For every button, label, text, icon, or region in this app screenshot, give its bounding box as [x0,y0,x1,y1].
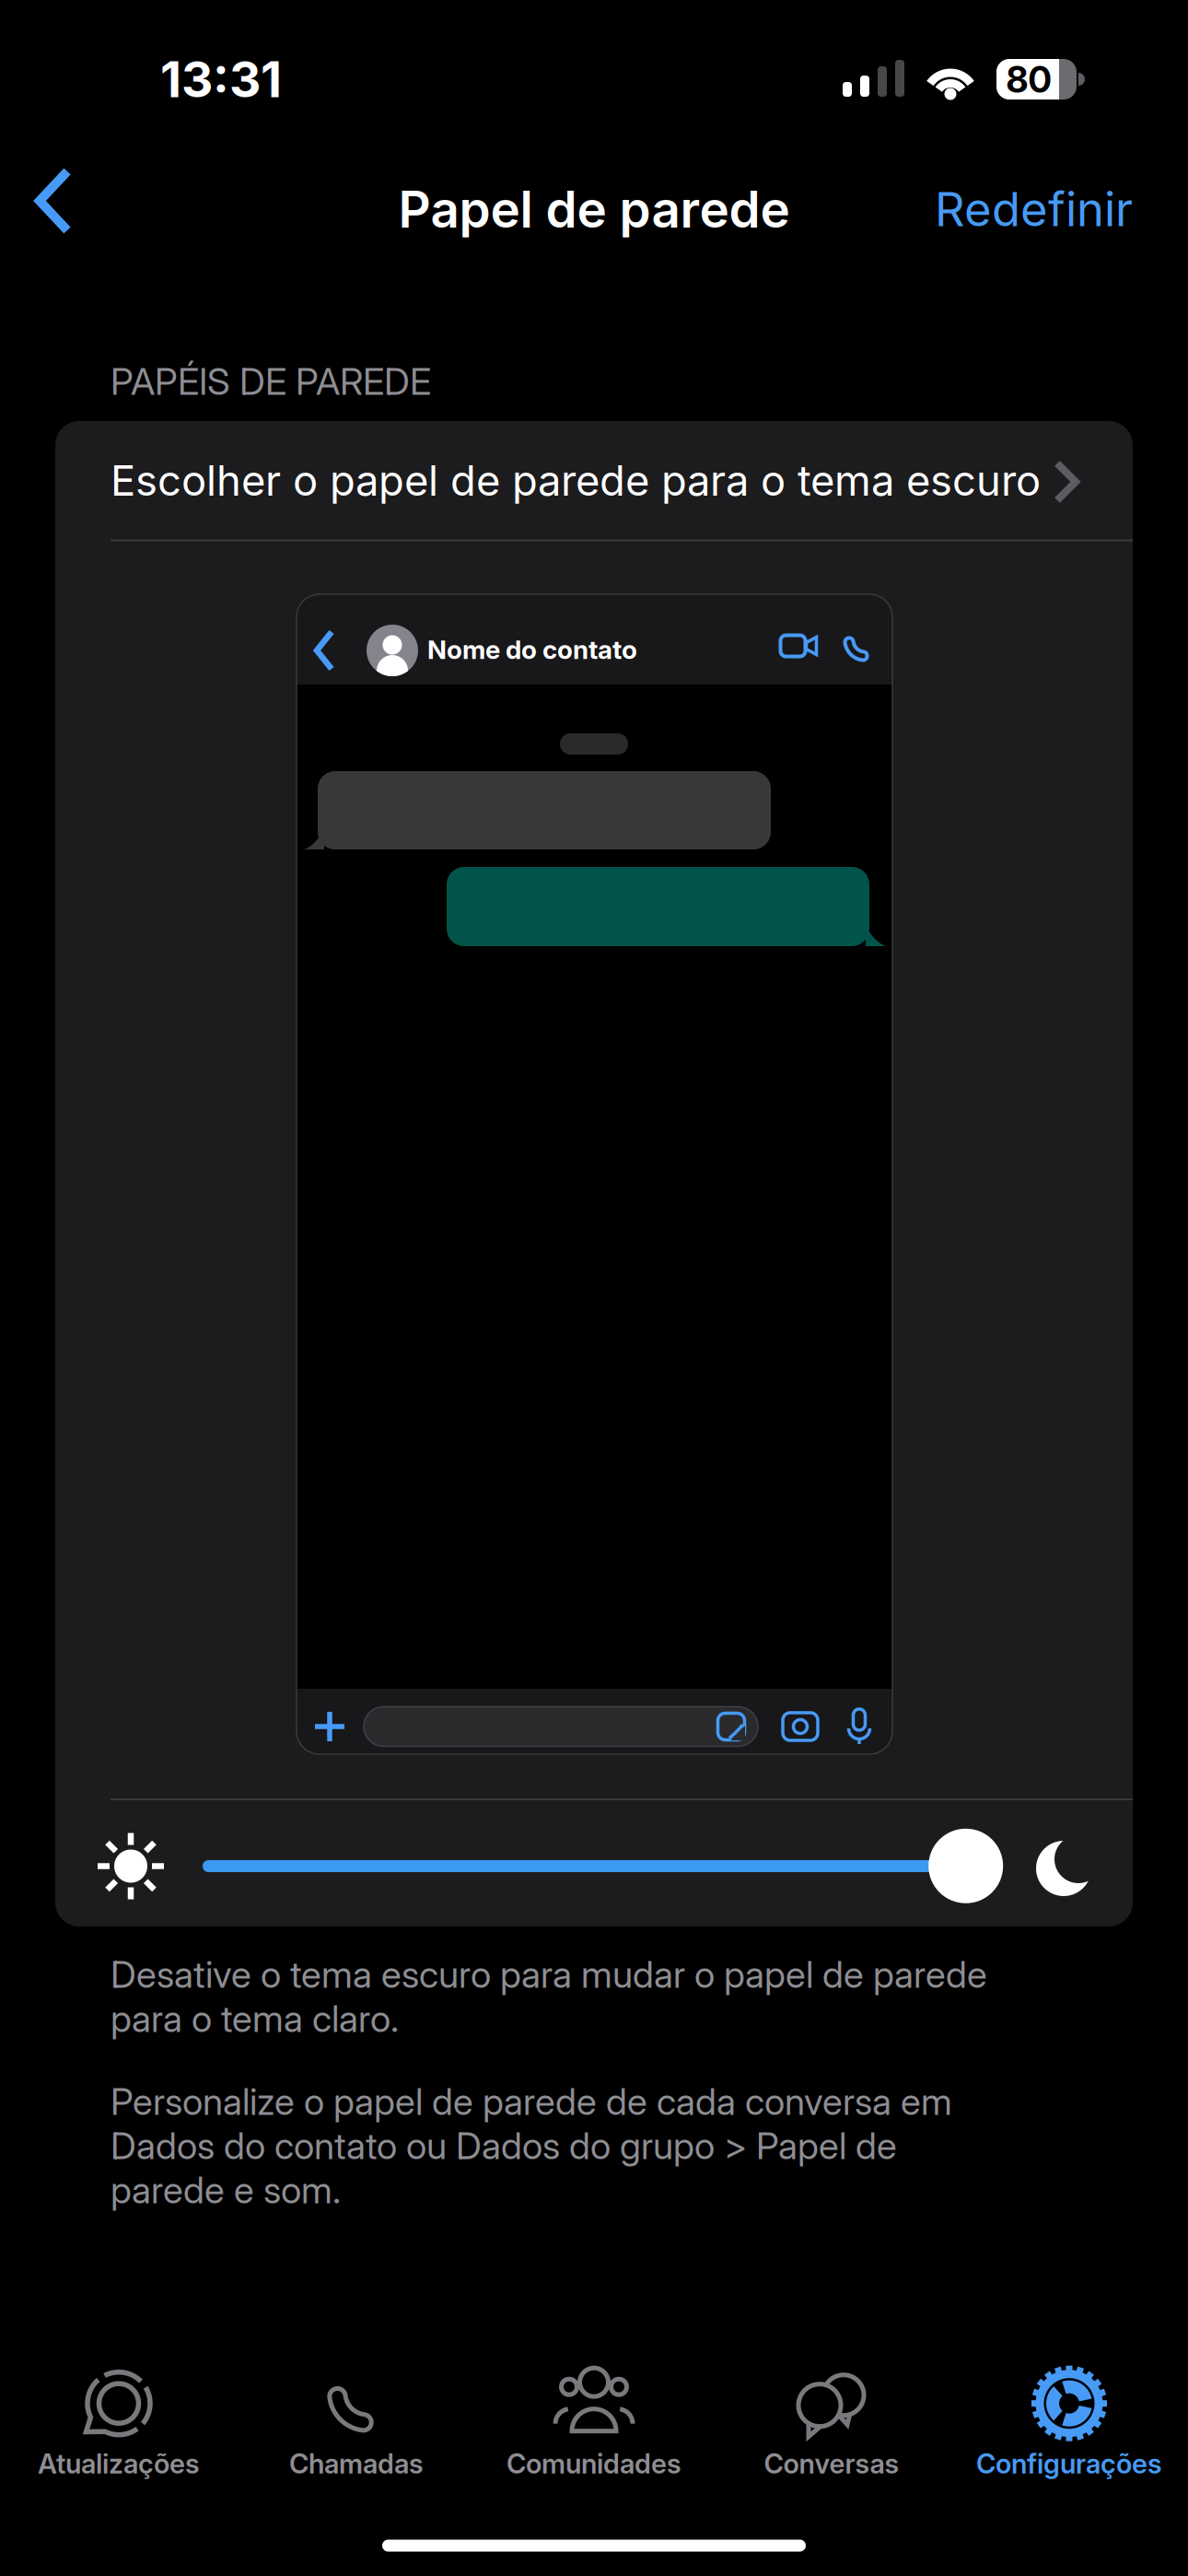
staticText: Papel de parede [398,179,790,239]
button[interactable]: Atualizações [1,2363,237,2483]
button[interactable]: Comunidades [476,2363,712,2483]
button[interactable]: Configurações [951,2363,1187,2483]
staticText: Redefinir [935,182,1133,237]
staticText: 13:31 [160,50,282,108]
staticText: Conversas [764,2448,899,2480]
staticText: PAPÉIS DE PAREDE [111,360,431,403]
staticText: Configurações [976,2448,1162,2480]
staticText: Escolher o papel de parede para o tema e… [111,456,1041,505]
button[interactable]: Conversas [714,2363,949,2483]
staticText: Dados do contato ou Dados do grupo > Pap… [111,2124,897,2167]
staticText: Comunidades [507,2448,681,2480]
button[interactable]: Redefinir [764,182,1133,237]
button[interactable]: Chamadas [239,2363,474,2483]
staticText: Nome do contato [427,634,637,665]
staticText: Desative o tema escuro para mudar o pape… [111,1953,987,1996]
button[interactable]: Back [32,166,75,236]
staticText: parede e som. [111,2168,341,2212]
button[interactable]: Escolher o papel de parede para o tema e… [55,421,1133,540]
staticText: para o tema claro. [111,1997,399,2040]
staticText: Atualizações [38,2448,200,2480]
staticText: Chamadas [289,2448,424,2480]
staticText: Personalize o papel de parede de cada co… [111,2080,952,2123]
staticText: 80 [1006,59,1051,101]
